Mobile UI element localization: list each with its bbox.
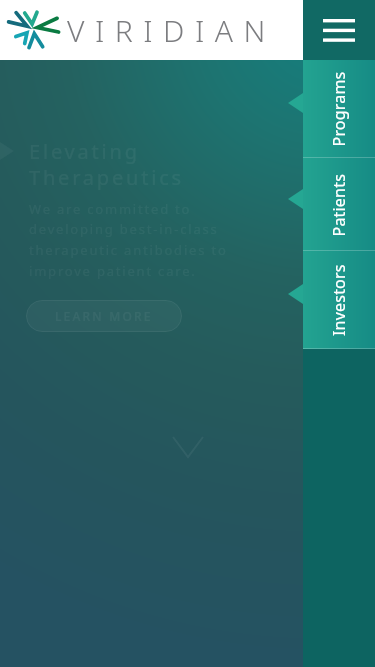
staticText: Elevating Therapeutics	[29, 138, 184, 191]
staticText: Patients	[327, 173, 349, 236]
button[interactable]: Programs	[288, 60, 375, 158]
staticText: LEARN MORE	[55, 308, 153, 324]
button[interactable]: LEARN MORE	[26, 300, 182, 332]
staticText: Investors	[328, 264, 350, 336]
button[interactable]: Patients	[288, 158, 375, 251]
button[interactable]: Menu	[303, 0, 375, 60]
staticText: VIRIDIAN	[67, 10, 276, 51]
staticText: Programs	[327, 71, 349, 146]
button[interactable]: Previous slide	[0, 140, 14, 162]
button[interactable]: VIRIDIAN	[0, 0, 303, 60]
staticText: We are committed to developing best-in-c…	[29, 200, 235, 280]
button[interactable]: Scroll down	[173, 437, 203, 457]
button[interactable]: Investors	[288, 251, 375, 349]
